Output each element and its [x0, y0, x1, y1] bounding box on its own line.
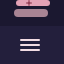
button[interactable]: Add	[16, 0, 50, 6]
button[interactable]: Menu	[12, 27, 48, 63]
